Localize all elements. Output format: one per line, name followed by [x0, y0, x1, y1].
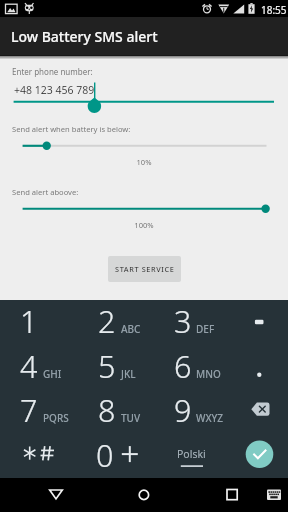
staticText: 6: [174, 345, 192, 387]
button[interactable]: 0: [78, 434, 156, 479]
button[interactable]: 9: [156, 389, 234, 434]
staticText: 100%: [0, 220, 288, 230]
button[interactable]: 6: [156, 345, 234, 390]
staticText: 18:55: [261, 3, 287, 17]
staticText: 10%: [0, 157, 288, 167]
staticText: 7: [20, 389, 38, 431]
staticText: 4: [20, 345, 38, 387]
staticText: ABC: [121, 322, 141, 336]
button[interactable]: 3: [156, 300, 234, 345]
button[interactable]: 7: [0, 389, 78, 434]
staticText: GHI: [43, 367, 62, 381]
staticText: Send alert aboove:: [12, 187, 79, 197]
staticText: PQRS: [43, 411, 69, 425]
staticText: Low Battery SMS alert: [11, 27, 158, 46]
button[interactable]: 2: [78, 300, 156, 345]
button[interactable]: 1: [0, 300, 78, 345]
button[interactable]: Switch keyboard: [260, 478, 288, 512]
staticText: 3: [174, 300, 192, 342]
staticText: 5: [98, 345, 116, 387]
staticText: +48 123 456 789: [14, 83, 95, 97]
staticText: TUV: [121, 411, 141, 425]
button[interactable]: Back: [42, 478, 70, 512]
staticText: JKL: [121, 367, 136, 381]
staticText: 2: [98, 300, 116, 342]
button[interactable]: Star and hash: [0, 434, 78, 479]
button[interactable]: Recent apps: [218, 478, 246, 512]
button[interactable]: 4: [0, 345, 78, 390]
button[interactable]: 5: [78, 345, 156, 390]
button[interactable]: START SERVICE: [108, 256, 181, 282]
staticText: WXYZ: [196, 411, 224, 425]
staticText: 8: [98, 389, 116, 431]
button[interactable]: Backspace: [234, 389, 288, 434]
staticText: Send alert when battery is below:: [12, 124, 131, 134]
button[interactable]: Enter: [234, 434, 288, 479]
staticText: 9: [174, 389, 192, 431]
staticText: Polski: [177, 447, 206, 461]
staticText: Enter phone number:: [12, 66, 93, 77]
button[interactable]: Dash: [234, 300, 288, 345]
button[interactable]: Home: [130, 478, 158, 512]
button[interactable]: 8: [78, 389, 156, 434]
staticText: 1: [20, 300, 38, 342]
button[interactable]: Polski: [156, 434, 234, 479]
staticText: DEF: [196, 322, 215, 336]
staticText: 0: [96, 434, 114, 476]
button[interactable]: Dot: [234, 345, 288, 390]
staticText: START SERVICE: [115, 264, 175, 274]
staticText: MNO: [196, 367, 221, 381]
